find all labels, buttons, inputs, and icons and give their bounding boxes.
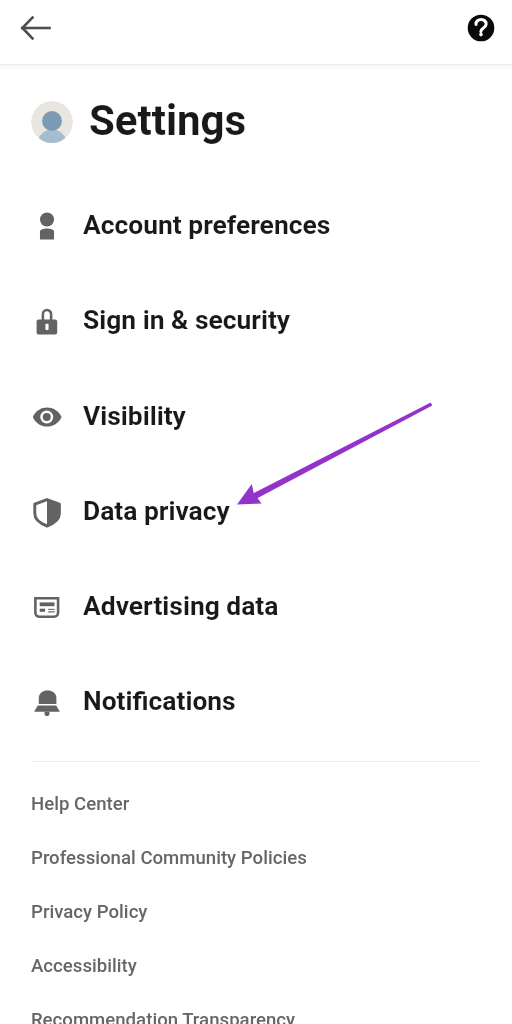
button[interactable]: Help <box>459 6 503 50</box>
button[interactable]: Privacy Policy <box>0 885 512 939</box>
staticText: Advertising data <box>83 591 279 622</box>
button[interactable]: Data privacy <box>0 465 512 559</box>
staticText: Help Center <box>31 793 130 815</box>
staticText: Visibility <box>83 401 186 432</box>
staticText: Notifications <box>83 686 236 717</box>
button[interactable]: Professional Community Policies <box>0 831 512 885</box>
staticText: Privacy Policy <box>31 901 148 923</box>
button[interactable]: Advertising data <box>0 560 512 654</box>
button[interactable]: Account preferences <box>0 179 512 273</box>
staticText: Settings <box>89 96 247 145</box>
button[interactable]: Recommendation Transparency <box>0 993 512 1024</box>
staticText: Data privacy <box>83 496 230 527</box>
button[interactable]: Back <box>14 6 58 50</box>
staticText: Professional Community Policies <box>31 847 307 869</box>
staticText: Sign in & security <box>83 305 291 336</box>
staticText: Accessibility <box>31 955 137 977</box>
button[interactable]: Help Center <box>0 777 512 831</box>
staticText: Recommendation Transparency <box>31 1009 296 1024</box>
staticText: Account preferences <box>83 210 331 241</box>
button[interactable]: Sign in & security <box>0 274 512 368</box>
button[interactable]: Visibility <box>0 370 512 464</box>
button[interactable]: Accessibility <box>0 939 512 993</box>
button[interactable]: Notifications <box>0 655 512 749</box>
